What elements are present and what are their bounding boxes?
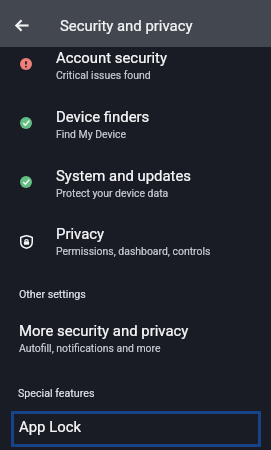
staticText: System and updates bbox=[56, 167, 192, 184]
button[interactable]: More security and privacy bbox=[0, 310, 271, 362]
button[interactable]: System and updates bbox=[0, 152, 271, 211]
staticText: Security and privacy bbox=[60, 17, 193, 34]
staticText: Special features bbox=[18, 387, 95, 400]
staticText: Device finders bbox=[56, 108, 150, 125]
staticText: App Lock bbox=[19, 418, 81, 435]
staticText: Other settings bbox=[19, 288, 86, 301]
staticText: Permissions, dashboard, controls bbox=[56, 245, 211, 257]
button[interactable]: Privacy bbox=[0, 210, 271, 269]
staticText: Critical issues found bbox=[56, 69, 151, 81]
button[interactable]: Back bbox=[0, 0, 44, 47]
button[interactable]: App Lock bbox=[14, 414, 258, 444]
staticText: Account security bbox=[56, 49, 167, 66]
button[interactable]: Account security bbox=[0, 34, 271, 93]
staticText: Autofill, notifications and more bbox=[19, 342, 161, 354]
staticText: Protect your device data bbox=[56, 187, 169, 199]
button[interactable]: Device finders bbox=[0, 93, 271, 152]
staticText: More security and privacy bbox=[19, 322, 189, 339]
staticText: Find My Device bbox=[56, 128, 127, 140]
staticText: Privacy bbox=[56, 225, 105, 242]
